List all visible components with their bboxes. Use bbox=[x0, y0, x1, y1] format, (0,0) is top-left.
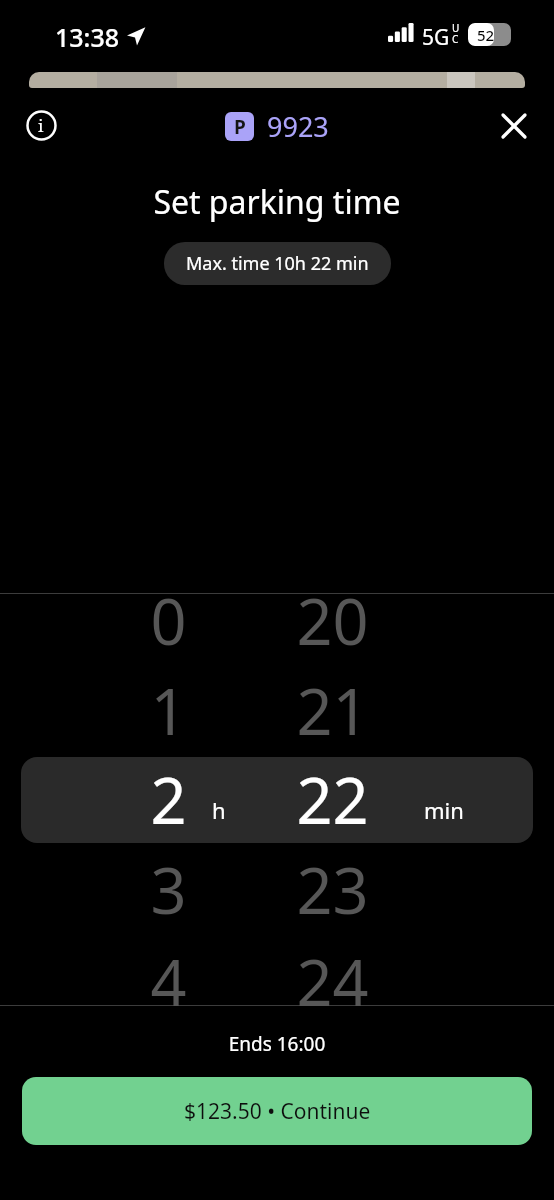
staticText: Max. time 10h 22 min bbox=[186, 251, 369, 276]
button[interactable]: Max. time 10h 22 min bbox=[164, 242, 391, 285]
staticText: Set parking time bbox=[153, 180, 401, 224]
staticText: h bbox=[212, 795, 226, 825]
staticText: i bbox=[38, 114, 44, 137]
button[interactable]: P bbox=[225, 108, 329, 145]
staticText: P bbox=[234, 114, 246, 140]
staticText: C bbox=[452, 32, 459, 46]
button[interactable]: Information bbox=[18, 102, 64, 148]
staticText: Ends 16:00 bbox=[0, 1031, 554, 1057]
staticText: 0 bbox=[150, 578, 187, 664]
staticText: 9923 bbox=[267, 108, 329, 145]
staticText: 24 bbox=[296, 939, 369, 1025]
staticText: 52 bbox=[477, 25, 495, 45]
staticText: 3 bbox=[150, 847, 187, 933]
button[interactable]: Close bbox=[491, 103, 537, 149]
staticText: 1 bbox=[150, 668, 187, 754]
staticText: 21 bbox=[296, 668, 369, 754]
staticText: $123.50 • Continue bbox=[184, 1097, 371, 1126]
staticText: U bbox=[452, 21, 460, 35]
staticText: 23 bbox=[296, 847, 369, 933]
button[interactable] bbox=[21, 757, 533, 843]
staticText: 22 bbox=[296, 757, 369, 843]
staticText: min bbox=[424, 795, 464, 825]
staticText: 4 bbox=[150, 939, 187, 1025]
staticText: 13:38 bbox=[55, 20, 120, 54]
staticText: 2 bbox=[150, 757, 187, 843]
button[interactable]: $123.50 • Continue bbox=[22, 1077, 532, 1145]
staticText: 5G bbox=[422, 23, 450, 52]
staticText: 20 bbox=[296, 578, 369, 664]
